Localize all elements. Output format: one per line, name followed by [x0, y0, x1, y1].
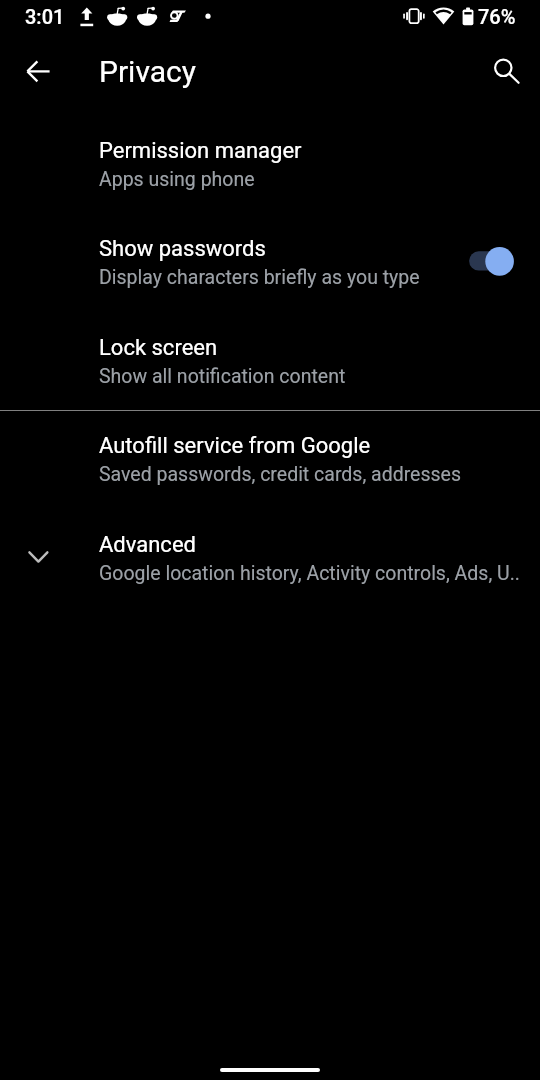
staticText: Display characters briefly as you type: [99, 266, 420, 289]
staticText: Lock screen: [99, 335, 218, 361]
staticText: 3:01: [25, 5, 65, 28]
staticText: Show passwords: [99, 236, 266, 262]
staticText: Apps using phone: [99, 168, 255, 191]
button[interactable]: Show passwords toggle, on: [462, 240, 522, 284]
button[interactable]: Expand: [0, 508, 540, 605]
staticText: 76%: [478, 5, 516, 28]
button[interactable]: Expand: [15, 538, 63, 586]
staticText: Permission manager: [99, 138, 302, 164]
button[interactable]: Permission manager: [0, 114, 540, 211]
staticText: Saved passwords, credit cards, addresses: [99, 463, 461, 486]
staticText: Privacy: [99, 54, 196, 89]
button[interactable]: Navigate up: [14, 47, 63, 96]
staticText: Autofill service from Google: [99, 433, 371, 459]
button[interactable]: Search: [479, 45, 531, 97]
button[interactable]: Autofill service from Google: [0, 409, 540, 506]
staticText: Show all notification content: [99, 365, 346, 388]
button[interactable]: Lock screen: [0, 311, 540, 406]
staticText: Google location history, Activity contro…: [99, 562, 520, 585]
button[interactable]: Show passwords: [0, 212, 540, 309]
staticText: Advanced: [99, 532, 196, 558]
